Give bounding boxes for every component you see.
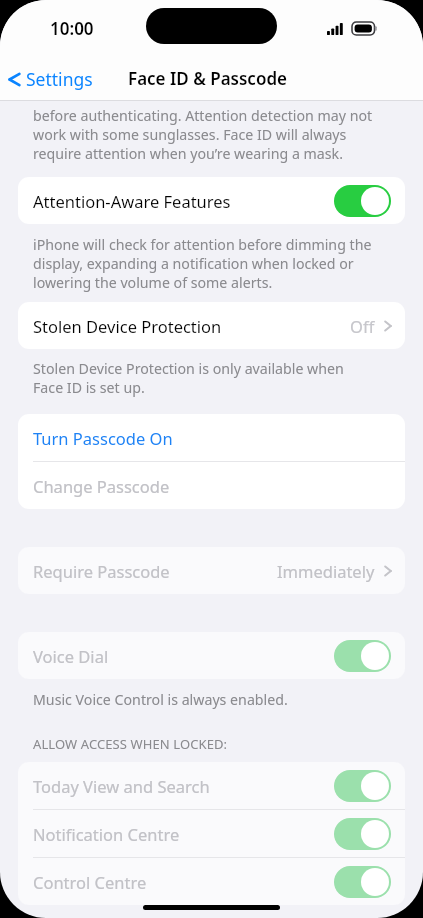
staticText: Control Centre (33, 871, 147, 893)
other: Toggle (334, 866, 391, 898)
staticText: Stolen Device Protection is only availab… (33, 359, 344, 378)
staticText: Music Voice Control is always enabled. (33, 690, 288, 709)
staticText: require attention when you’re wearing a … (33, 144, 343, 163)
button[interactable]: Settings (0, 63, 99, 95)
staticText: Notification Centre (33, 823, 180, 845)
other: Toggle (334, 818, 391, 850)
staticText: Off (350, 315, 375, 337)
button[interactable]: Today View and Search (18, 762, 405, 809)
staticText: iPhone will check for attention before d… (33, 235, 372, 254)
button[interactable]: Notification Centre (18, 810, 405, 857)
staticText: Today View and Search (33, 775, 210, 797)
staticText: Attention-Aware Features (33, 190, 231, 212)
staticText: Face ID & Passcode (128, 67, 287, 90)
staticText: 10:00 (50, 17, 94, 40)
button[interactable]: Change Passcode (18, 462, 405, 509)
staticText: Immediately (277, 560, 375, 582)
staticText: before authenticating. Attention detecti… (33, 106, 373, 125)
button[interactable]: Turn Passcode On (18, 414, 405, 461)
button[interactable]: Control Centre (18, 858, 405, 905)
other: Toggle (334, 770, 391, 802)
staticText: ALLOW ACCESS WHEN LOCKED: (33, 735, 228, 753)
staticText: Face ID is set up. (33, 378, 145, 397)
staticText: display, expanding a notification when l… (33, 254, 354, 273)
staticText: Voice Dial (33, 645, 109, 667)
staticText: Stolen Device Protection (33, 315, 222, 337)
other: Toggle (334, 185, 391, 217)
staticText: Turn Passcode On (33, 427, 173, 449)
staticText: Settings (26, 67, 93, 91)
button[interactable]: Stolen Device Protection (18, 302, 405, 349)
button[interactable]: Require Passcode (18, 547, 405, 594)
button[interactable]: Voice Dial (18, 632, 405, 679)
staticText: lowering the volume of some alerts. (33, 273, 273, 292)
staticText: Change Passcode (33, 475, 170, 497)
button[interactable]: Attention-Aware Features (18, 177, 405, 224)
staticText: Require Passcode (33, 560, 170, 582)
staticText: work with some sunglasses. Face ID will … (33, 125, 347, 144)
other: Toggle (334, 640, 391, 672)
